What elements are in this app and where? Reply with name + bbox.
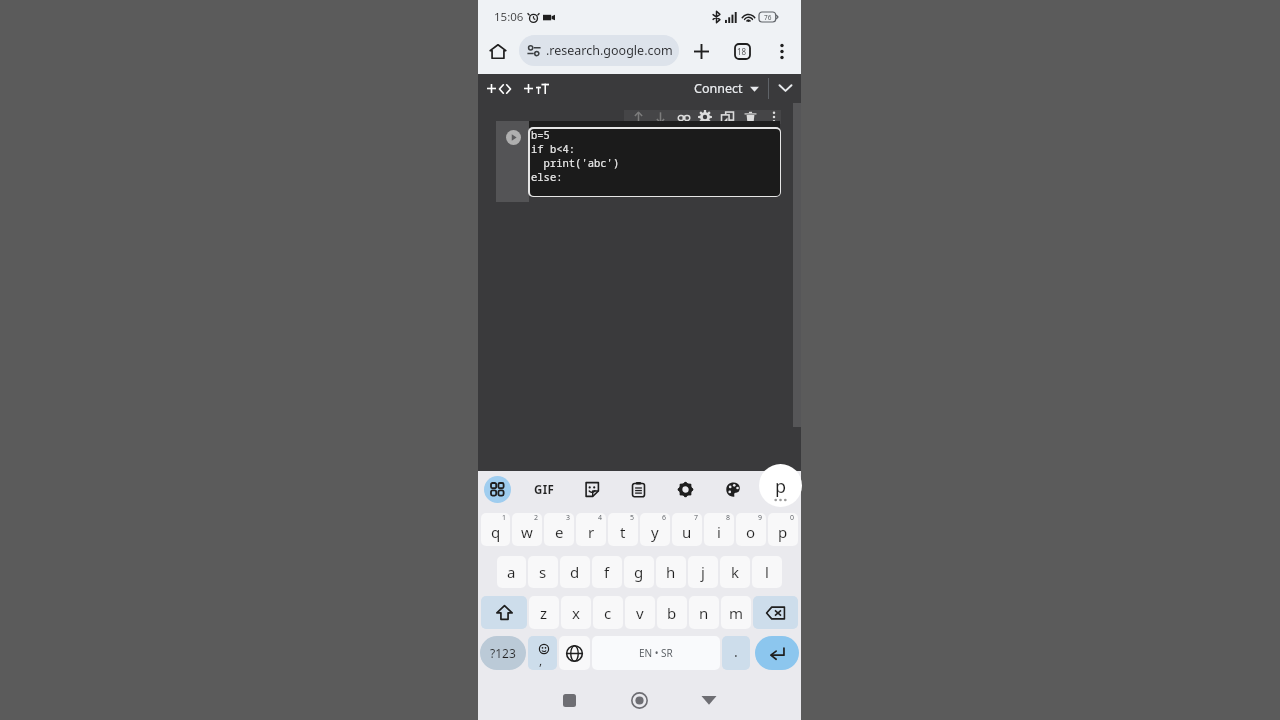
staticText: GIF <box>534 482 555 498</box>
button[interactable]: Home <box>485 39 510 64</box>
button[interactable]: EN • SR <box>592 636 720 670</box>
button[interactable]: Emoji <box>528 636 557 670</box>
button[interactable]: More cell actions <box>764 107 784 127</box>
staticText: 5 <box>630 513 635 523</box>
button[interactable]: Mirror cell <box>717 107 737 127</box>
button[interactable]: u <box>672 513 702 546</box>
staticText: .research.google.com <box>546 42 673 59</box>
staticText: 4 <box>598 513 603 523</box>
button[interactable]: e <box>544 513 574 546</box>
button[interactable]: w <box>512 513 542 546</box>
button[interactable]: y <box>640 513 670 546</box>
button[interactable]: v <box>625 596 655 629</box>
button[interactable]: g <box>624 556 654 588</box>
button[interactable]: k <box>720 556 750 588</box>
staticText: if b<4: <box>531 142 576 156</box>
button[interactable]: Expand toolbar <box>775 78 795 98</box>
button[interactable]: b <box>657 596 687 629</box>
staticText: l <box>765 562 769 582</box>
button[interactable]: Backspace <box>753 596 798 629</box>
staticText: y <box>651 522 659 542</box>
staticText: 7 <box>694 513 699 523</box>
button[interactable]: h <box>656 556 686 588</box>
button[interactable]: f <box>592 556 622 588</box>
button[interactable]: .research.google.com <box>519 35 679 66</box>
staticText: e <box>555 522 564 542</box>
button[interactable]: j <box>688 556 718 588</box>
button[interactable]: n <box>689 596 719 629</box>
staticText: ?123 <box>490 645 516 661</box>
button[interactable]: c <box>593 596 623 629</box>
button[interactable]: Clipboard <box>625 476 652 503</box>
button[interactable]: Move down <box>650 107 670 127</box>
staticText: p <box>778 522 788 542</box>
staticText: print('abc') <box>531 156 620 170</box>
button[interactable]: o <box>736 513 766 546</box>
button[interactable]: Enter <box>755 636 799 670</box>
button[interactable]: x <box>561 596 591 629</box>
staticText: n <box>699 603 709 623</box>
staticText: s <box>539 562 547 582</box>
button[interactable]: . <box>722 636 750 670</box>
button[interactable]: Link to cell <box>674 108 694 128</box>
button[interactable]: Delete cell <box>740 107 760 127</box>
button[interactable]: More options <box>769 38 795 64</box>
button[interactable]: Home <box>623 684 655 716</box>
staticText: m <box>729 603 744 623</box>
staticText: x <box>572 603 580 623</box>
button[interactable]: Shift <box>481 596 527 629</box>
button[interactable]: Run cell <box>506 130 521 145</box>
button[interactable]: Add code cell <box>485 79 513 98</box>
staticText: q <box>491 522 501 542</box>
button[interactable]: r <box>576 513 606 546</box>
staticText: a <box>507 562 516 582</box>
button[interactable]: Hide keyboard <box>693 684 725 716</box>
button[interactable]: m <box>721 596 751 629</box>
button[interactable]: Toolbox <box>484 476 511 503</box>
button[interactable]: Connect <box>690 78 763 99</box>
staticText: c <box>604 603 612 623</box>
button[interactable]: a <box>497 556 526 588</box>
button[interactable]: Stickers <box>578 476 605 503</box>
button[interactable]: ?123 <box>480 636 526 670</box>
button[interactable]: Themes <box>720 476 747 503</box>
button[interactable]: New tab <box>688 38 714 64</box>
staticText: , <box>539 652 543 668</box>
button[interactable]: z <box>529 596 559 629</box>
button[interactable]: Add text cell <box>522 79 551 98</box>
staticText: j <box>701 562 705 582</box>
staticText: . <box>734 642 738 661</box>
staticText: t <box>620 522 626 542</box>
button[interactable]: i <box>704 513 734 546</box>
staticText: f <box>604 562 610 582</box>
button[interactable]: d <box>560 556 590 588</box>
button[interactable]: p <box>759 464 802 507</box>
staticText: h <box>666 562 676 582</box>
button[interactable]: s <box>528 556 558 588</box>
staticText: 3 <box>566 513 571 523</box>
staticText: else: <box>531 170 563 184</box>
staticText: i <box>717 522 721 542</box>
button[interactable]: t <box>608 513 638 546</box>
staticText: o <box>746 522 756 542</box>
staticText: 8 <box>726 513 731 523</box>
button[interactable]: Recents <box>553 684 585 716</box>
staticText: v <box>636 603 644 623</box>
button[interactable]: Move up <box>628 107 648 127</box>
button[interactable]: q <box>481 513 510 546</box>
button[interactable]: Cell settings <box>695 107 715 127</box>
button[interactable]: GIF <box>531 476 558 503</box>
staticText: 15:06 <box>494 9 524 25</box>
staticText: d <box>570 562 580 582</box>
staticText: u <box>682 522 692 542</box>
button[interactable]: Change language <box>559 636 590 670</box>
button[interactable]: Settings <box>672 476 699 503</box>
button[interactable]: p <box>768 513 798 546</box>
staticText: b=5 <box>531 129 550 142</box>
staticText: 18 <box>737 46 747 57</box>
staticText: p <box>775 474 787 499</box>
button[interactable]: Tabs: 18 <box>729 38 755 64</box>
staticText: EN • SR <box>639 646 673 660</box>
staticText: z <box>540 603 548 623</box>
button[interactable]: l <box>752 556 782 588</box>
